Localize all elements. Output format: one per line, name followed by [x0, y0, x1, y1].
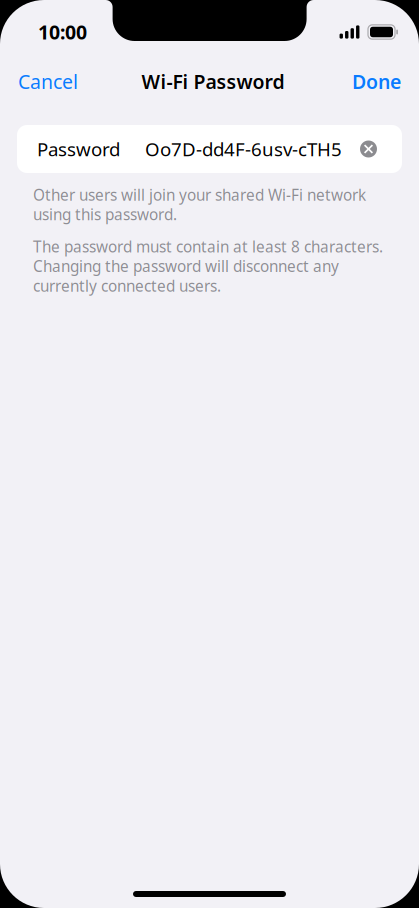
button[interactable]: Clear password	[360, 140, 377, 157]
staticText: Oo7D-dd4F-6usv-cTH5	[145, 137, 342, 161]
staticText: Other users will join your shared Wi-Fi …	[33, 185, 366, 205]
staticText: currently connected users.	[33, 275, 221, 296]
staticText: using this password.	[33, 204, 177, 225]
staticText: 10:00	[38, 19, 87, 45]
staticText: Password	[37, 137, 120, 161]
staticText: The password must contain at least 8 cha…	[33, 236, 383, 257]
button[interactable]: Cancel	[18, 58, 78, 105]
button[interactable]: Password	[17, 125, 402, 173]
staticText: Changing the password will disconnect an…	[33, 256, 339, 276]
staticText: Cancel	[18, 69, 78, 94]
staticText: Done	[352, 69, 401, 94]
button[interactable]: Done	[352, 58, 401, 105]
staticText: Wi-Fi Password	[141, 69, 284, 94]
